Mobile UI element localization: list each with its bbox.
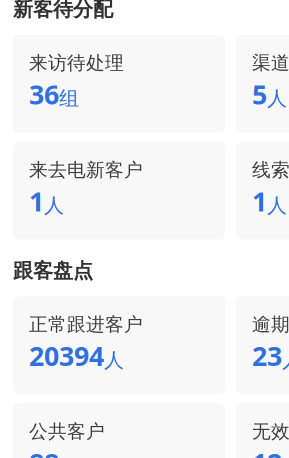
staticText: 1人	[252, 183, 287, 219]
staticText: 正常跟进客户	[29, 313, 143, 336]
staticText: 公共客户	[29, 420, 105, 443]
button[interactable]: 来去电新客户	[13, 142, 225, 240]
staticText: 23人	[252, 338, 289, 373]
staticText: 新客待分配	[13, 0, 113, 22]
staticText: 1人	[29, 183, 64, 219]
staticText: 线索客户	[252, 159, 289, 181]
staticText: 来访待处理	[29, 52, 124, 74]
button[interactable]: 公共客户	[13, 403, 225, 458]
button[interactable]: 正常跟进客户	[13, 296, 225, 394]
staticText: 88人	[29, 445, 79, 458]
staticText: 来去电新客户	[29, 159, 143, 181]
staticText: 跟客盘点	[13, 259, 93, 283]
button[interactable]: 逾期跟进	[236, 296, 289, 394]
staticText: 逾期跟进	[252, 313, 289, 336]
staticText: 渠道带客	[252, 52, 289, 74]
staticText: 无效客户	[252, 420, 289, 443]
staticText: 20394人	[29, 338, 124, 373]
staticText: 12人	[252, 445, 289, 458]
button[interactable]: 渠道带客	[236, 35, 289, 133]
button[interactable]: 无效客户	[236, 403, 289, 458]
staticText: 36组	[29, 76, 79, 112]
staticText: 5人	[252, 76, 287, 112]
button[interactable]: 线索客户	[236, 142, 289, 240]
button[interactable]: 来访待处理	[13, 35, 225, 133]
